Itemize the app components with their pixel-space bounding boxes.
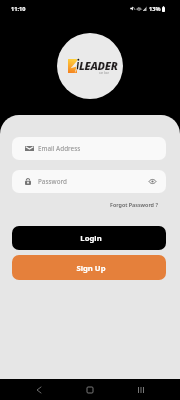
staticText: LEADER (79, 58, 118, 73)
staticText: car bar (99, 71, 109, 75)
button[interactable]: Email Address (12, 137, 166, 160)
staticText: Sign Up (76, 263, 106, 273)
button[interactable]: Forgot Password ? (110, 201, 158, 208)
button[interactable]: Home (82, 382, 98, 398)
button[interactable]: Password (12, 170, 166, 193)
staticText: Email Address (38, 144, 81, 153)
button[interactable]: Login (12, 226, 166, 250)
staticText: 13% (149, 5, 161, 13)
button[interactable]: Show password (147, 176, 158, 187)
button[interactable]: Recent apps (133, 382, 149, 398)
staticText: 11:10 (11, 5, 26, 13)
staticText: Forgot Password ? (110, 201, 158, 208)
staticText: Password (38, 177, 67, 186)
staticText: Login (80, 233, 102, 243)
button[interactable]: Sign Up (12, 255, 166, 280)
button[interactable]: Back (31, 382, 47, 398)
